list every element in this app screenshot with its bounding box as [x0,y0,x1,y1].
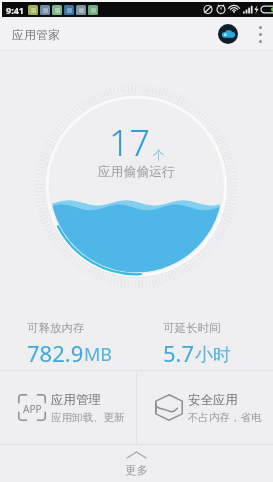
staticText: 可延长时间 [163,321,221,335]
staticText: 不占内存，省电 [188,411,262,424]
button[interactable]: More options [252,21,268,47]
staticText: 9:41 [6,4,24,16]
staticText: 应用偷偷运行 [98,164,175,180]
staticText: MB [84,342,113,367]
staticText: APP [23,402,42,416]
button[interactable]: 更多 [0,445,273,482]
button[interactable]: 安全应用 [137,371,273,444]
button[interactable]: APP [0,371,136,444]
staticText: 个 [153,148,165,162]
staticText: 5.7 [163,338,195,368]
staticText: 应用卸载、更新 [51,411,125,424]
staticText: 小时 [195,344,231,367]
staticText: 安全应用 [188,392,238,408]
staticText: 应用管家 [12,27,60,42]
staticText: 可释放内存 [27,321,85,335]
staticText: 17 [109,118,151,167]
button[interactable]: Account [218,24,238,44]
staticText: 更多 [125,463,148,477]
staticText: 782.9 [27,338,84,368]
button[interactable]: 可释放内存 [0,296,136,370]
staticText: 应用管理 [51,392,101,408]
button[interactable]: 可延长时间 [136,296,273,370]
